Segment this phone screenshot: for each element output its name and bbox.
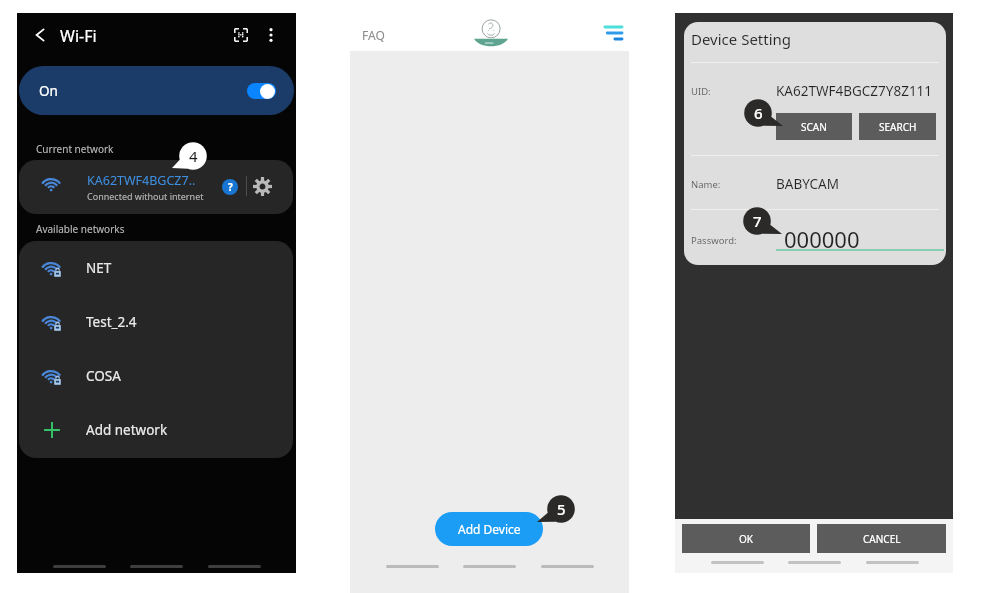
staticText: 6 <box>754 103 763 123</box>
staticText: 7 <box>753 211 762 231</box>
staticText: 000000 <box>784 224 860 254</box>
staticText: NET <box>86 259 112 277</box>
staticText: BABYCAM <box>776 175 839 193</box>
staticText: KA62TWF4BGCZ7Y8Z111 <box>776 82 933 100</box>
staticText: KA62TWF4BGCZ7.. <box>87 172 196 189</box>
button[interactable]: Test_2.4 <box>19 295 293 349</box>
staticText: On <box>39 82 58 100</box>
staticText: SCAN <box>801 120 827 134</box>
staticText: Name: <box>691 178 721 191</box>
staticText: UID: <box>691 85 711 98</box>
staticText: CANCEL <box>863 532 901 546</box>
staticText: Add Device <box>458 521 521 537</box>
staticText: Device Setting <box>691 29 792 49</box>
staticText: Test_2.4 <box>86 313 137 331</box>
button[interactable]: Add Device <box>435 512 543 546</box>
button[interactable]: More options <box>265 27 277 43</box>
staticText: 4 <box>189 146 198 166</box>
staticText: Add network <box>86 421 168 439</box>
staticText: Connected without internet <box>87 190 204 202</box>
button[interactable]: NET <box>19 241 293 295</box>
button[interactable]: COSA <box>19 349 293 403</box>
staticText: Wi-Fi <box>60 25 97 47</box>
button[interactable]: Back <box>30 25 50 45</box>
staticText: COSA <box>86 367 121 385</box>
staticText: 5 <box>557 499 566 519</box>
staticText: Password: <box>691 234 737 247</box>
button[interactable]: Network settings <box>253 177 272 196</box>
staticText: SEARCH <box>879 120 917 134</box>
staticText: Current network <box>36 142 114 156</box>
button[interactable]: Help <box>222 179 238 195</box>
staticText: OK <box>739 532 753 546</box>
button[interactable]: FAQ <box>357 23 390 47</box>
staticText: ? <box>228 180 233 194</box>
button[interactable]: Scan QR code <box>234 28 248 42</box>
button[interactable]: Add network <box>19 403 293 457</box>
button[interactable]: SCAN <box>776 113 852 140</box>
button[interactable]: CANCEL <box>817 524 946 553</box>
button[interactable]: Menu <box>602 23 625 43</box>
button[interactable]: SEARCH <box>859 113 936 140</box>
button[interactable]: On <box>19 66 294 115</box>
staticText: Available networks <box>36 222 125 236</box>
button[interactable]: OK <box>682 524 810 553</box>
staticText: FAQ <box>362 27 385 43</box>
button[interactable]: KA62TWF4BGCZ7.. <box>19 160 293 214</box>
